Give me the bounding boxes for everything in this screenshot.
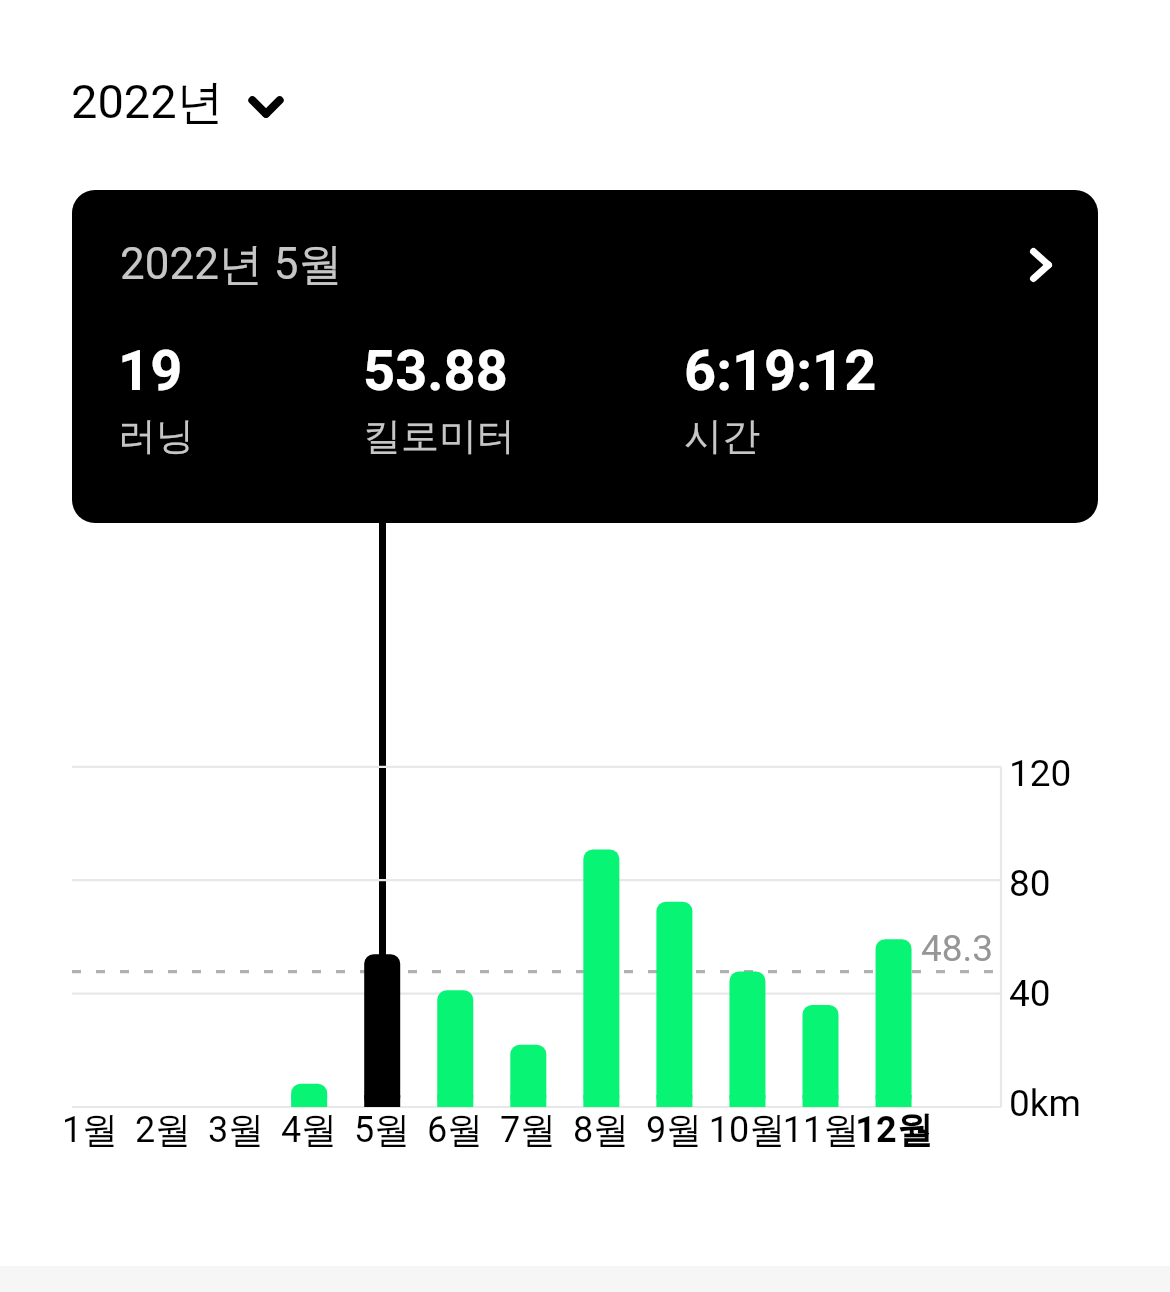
button[interactable]: 6월 기록 bbox=[419, 767, 492, 1162]
staticText: 6월 bbox=[405, 1107, 505, 1152]
staticText: 48.3 bbox=[921, 927, 994, 970]
staticText: 40 bbox=[1009, 972, 1051, 1015]
button[interactable]: 11월 기록 bbox=[784, 767, 857, 1162]
button[interactable]: 4월 기록 bbox=[273, 767, 346, 1162]
staticText: 9월 bbox=[624, 1107, 724, 1152]
staticText: 12월 bbox=[844, 1107, 944, 1152]
button[interactable]: 12월 기록 bbox=[857, 767, 930, 1162]
button[interactable]: 7월 기록 bbox=[492, 767, 565, 1162]
staticText: 11월 bbox=[771, 1107, 871, 1152]
staticText: 3월 bbox=[186, 1107, 286, 1152]
button[interactable]: 10월 기록 bbox=[711, 767, 784, 1162]
staticText: 킬로미터 bbox=[363, 412, 515, 460]
button[interactable]: 8월 기록 bbox=[565, 767, 638, 1162]
staticText: 시간 bbox=[684, 412, 760, 460]
staticText: 8월 bbox=[551, 1107, 651, 1152]
button[interactable]: 9월 기록 bbox=[638, 767, 711, 1162]
staticText: 러닝 bbox=[118, 412, 194, 460]
staticText: 120 bbox=[1009, 752, 1072, 795]
staticText: 2022년 5월 bbox=[120, 237, 343, 292]
other: 월간 기록 자세히 보기 bbox=[999, 219, 1083, 311]
staticText: 53.88 bbox=[363, 338, 508, 404]
button[interactable]: 2022년 bbox=[50, 58, 310, 150]
staticText: 4월 bbox=[259, 1107, 359, 1152]
button[interactable]: 2022년 5월 bbox=[72, 190, 1098, 523]
staticText: 10월 bbox=[697, 1107, 797, 1152]
staticText: 2월 bbox=[113, 1107, 213, 1152]
staticText: 80 bbox=[1009, 862, 1051, 905]
staticText: 2022년 bbox=[71, 73, 224, 132]
button[interactable]: 3월 기록 bbox=[200, 767, 273, 1162]
staticText: 0km bbox=[1009, 1082, 1081, 1125]
button[interactable]: 1월 기록 bbox=[53, 767, 126, 1162]
button[interactable]: 5월 기록 bbox=[346, 767, 419, 1162]
staticText: 5월 bbox=[332, 1107, 432, 1152]
staticText: 7월 bbox=[478, 1107, 578, 1152]
staticText: 1월 bbox=[40, 1107, 140, 1152]
button[interactable]: 2월 기록 bbox=[127, 767, 200, 1162]
staticText: 19 bbox=[118, 338, 183, 404]
staticText: 6:19:12 bbox=[684, 338, 877, 404]
